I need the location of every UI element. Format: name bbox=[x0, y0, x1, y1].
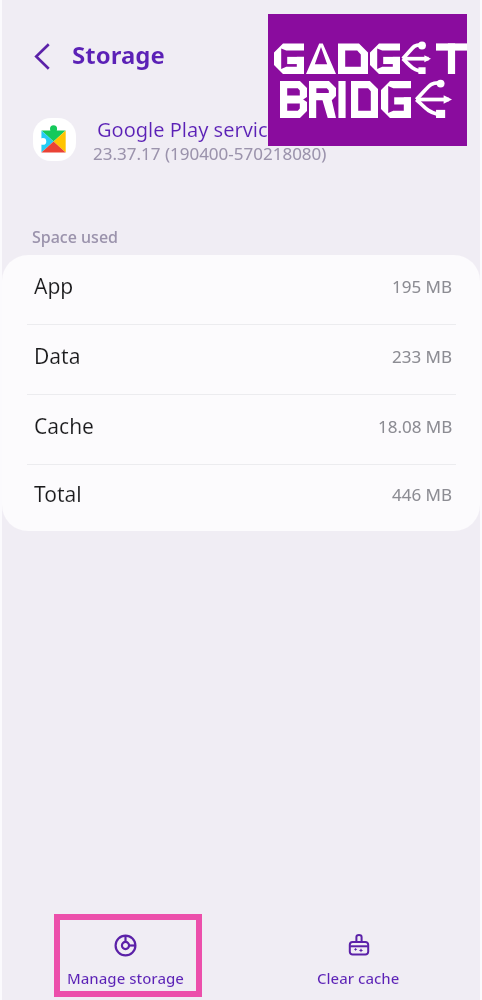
staticText: 23.37.17 (190400-570218080) bbox=[93, 142, 327, 165]
button[interactable]: Back bbox=[20, 34, 64, 78]
staticText: Total bbox=[34, 480, 82, 509]
staticText: Data bbox=[34, 342, 81, 371]
button[interactable]: Data bbox=[2, 325, 480, 395]
staticText: 446 MB bbox=[392, 483, 453, 506]
staticText: Space used bbox=[32, 226, 118, 248]
button[interactable]: Manage storage bbox=[54, 914, 202, 997]
staticText: Manage storage bbox=[67, 968, 184, 988]
button[interactable]: Clear cache bbox=[284, 914, 432, 997]
staticText: Clear cache bbox=[317, 968, 400, 988]
button[interactable]: Total bbox=[2, 465, 480, 531]
staticText: 233 MB bbox=[392, 345, 453, 368]
staticText: Storage bbox=[72, 38, 165, 71]
staticText: 18.08 MB bbox=[378, 415, 453, 438]
button[interactable]: Cache bbox=[2, 395, 480, 465]
staticText: App bbox=[34, 272, 74, 301]
staticText: Cache bbox=[34, 412, 94, 441]
staticText: 195 MB bbox=[392, 275, 453, 298]
staticText: Google Play services bbox=[97, 116, 289, 143]
button[interactable]: App bbox=[2, 255, 480, 325]
